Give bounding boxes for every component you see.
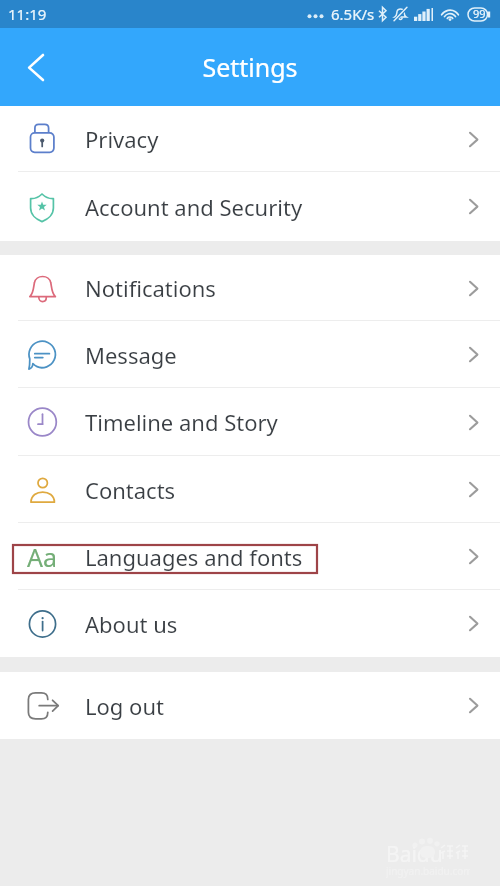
staticText: 11:19	[8, 4, 47, 24]
staticText: Message	[85, 340, 177, 370]
staticText: Log out	[85, 691, 164, 721]
staticText: Baidu	[386, 840, 443, 862]
button[interactable]: Log out	[0, 672, 500, 739]
button[interactable]: Aa	[0, 523, 500, 590]
staticText: 99	[473, 6, 486, 21]
button[interactable]: Back	[12, 44, 58, 90]
button[interactable]: Contacts	[0, 456, 500, 523]
staticText: Languages and fonts	[85, 542, 303, 572]
button[interactable]: Account and Security	[0, 172, 500, 241]
staticText: 6.5K/s	[331, 4, 375, 24]
button[interactable]: About us	[0, 590, 500, 657]
staticText: Notifications	[85, 273, 216, 303]
button[interactable]: Notifications	[0, 255, 500, 321]
staticText: Contacts	[85, 475, 176, 505]
staticText: Settings	[202, 50, 298, 84]
button[interactable]: Privacy	[0, 106, 500, 172]
staticText: Privacy	[85, 124, 159, 154]
staticText: About us	[85, 609, 178, 639]
staticText: Aa	[27, 540, 58, 574]
staticText: Account and Security	[85, 192, 303, 222]
staticText: Timeline and Story	[85, 407, 278, 437]
button[interactable]: Message	[0, 321, 500, 388]
button[interactable]: Timeline and Story	[0, 388, 500, 456]
